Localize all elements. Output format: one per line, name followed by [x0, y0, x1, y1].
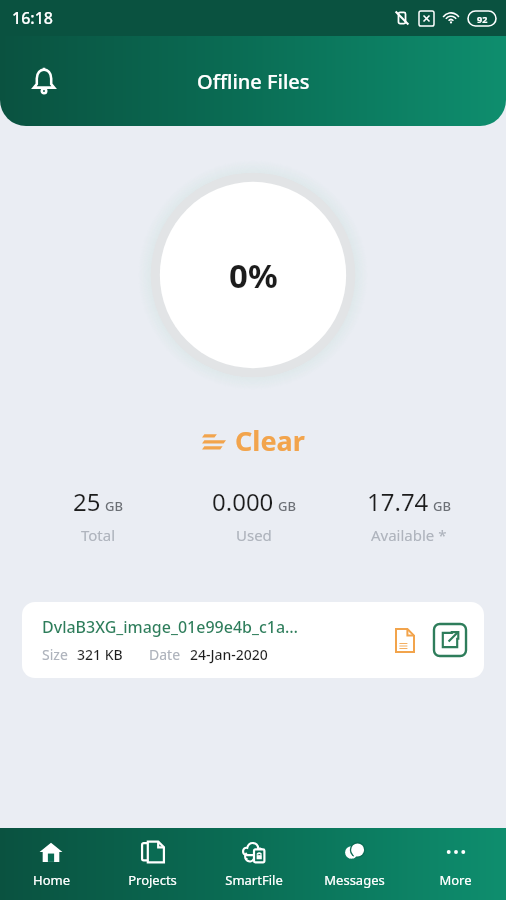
staticText: 17.74 — [367, 485, 429, 518]
staticText: 25 — [73, 485, 101, 518]
staticText: Home — [33, 871, 70, 889]
staticText: GB — [105, 497, 123, 515]
staticText: Available * — [371, 525, 447, 545]
staticText: Clear — [235, 422, 305, 459]
staticText: Size — [42, 645, 68, 664]
button[interactable]: More — [405, 831, 506, 897]
button[interactable]: DvlaB3XG_image_01e99e4b_c1a… — [22, 602, 484, 678]
staticText: DvlaB3XG_image_01e99e4b_c1a… — [42, 616, 299, 638]
staticText: 24-Jan-2020 — [190, 645, 268, 664]
button[interactable]: Messages — [304, 831, 405, 897]
button[interactable]: Projects — [102, 831, 203, 897]
staticText: GB — [433, 497, 451, 515]
staticText: 16:18 — [12, 7, 53, 29]
staticText: Used — [236, 525, 272, 545]
staticText: GB — [278, 497, 296, 515]
staticText: 0.000 — [212, 485, 274, 518]
staticText: More — [439, 871, 472, 889]
staticText: 0% — [229, 253, 278, 298]
staticText: SmartFile — [225, 871, 283, 889]
staticText: Date — [149, 645, 181, 664]
staticText: 321 KB — [77, 645, 123, 664]
button[interactable]: Home — [0, 831, 102, 897]
button[interactable]: File type — [388, 623, 422, 657]
staticText: Messages — [324, 871, 385, 889]
button[interactable]: Clear — [192, 418, 315, 463]
button[interactable]: Open file — [430, 620, 470, 660]
staticText: Total — [81, 525, 116, 545]
button[interactable]: Notifications — [18, 55, 70, 107]
staticText: Offline Files — [197, 68, 310, 95]
staticText: Projects — [128, 871, 177, 889]
staticText: 92 — [477, 13, 488, 25]
button[interactable]: SmartFile — [203, 831, 304, 897]
